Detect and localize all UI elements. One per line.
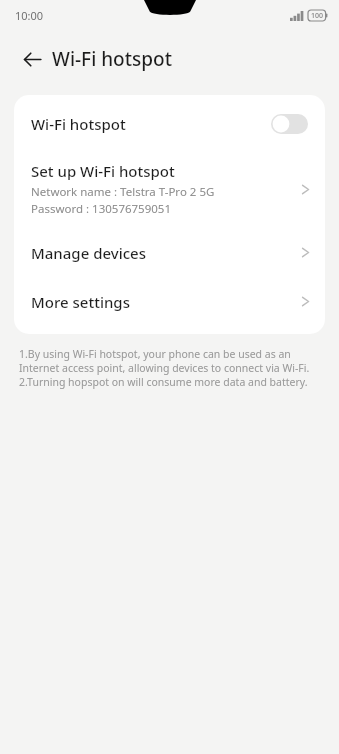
staticText: 100 (311, 11, 324, 21)
button[interactable]: Wi-Fi hotspot (14, 95, 325, 152)
button[interactable]: Manage devices (14, 228, 325, 277)
staticText: 10:00 (15, 8, 44, 23)
staticText: Wi-Fi hotspot (52, 46, 172, 72)
button[interactable]: Set up Wi-Fi hotspot (14, 152, 325, 228)
staticText: Set up Wi-Fi hotspot (31, 161, 175, 181)
staticText: 2.Turning hopspot on will consume more d… (19, 375, 308, 389)
staticText: Wi-Fi hotspot (31, 114, 126, 134)
button[interactable]: Back (12, 39, 52, 79)
staticText: More settings (31, 292, 130, 312)
staticText: Network name : Telstra T-Pro 2 5G (31, 184, 215, 200)
button[interactable]: More settings (14, 277, 325, 326)
button[interactable]: Wi-Fi hotspot toggle (271, 114, 308, 134)
staticText: 1.By using Wi-Fi hotspot, your phone can… (19, 347, 320, 375)
staticText: Password : 130576759051 (31, 201, 172, 217)
staticText: Manage devices (31, 243, 146, 263)
